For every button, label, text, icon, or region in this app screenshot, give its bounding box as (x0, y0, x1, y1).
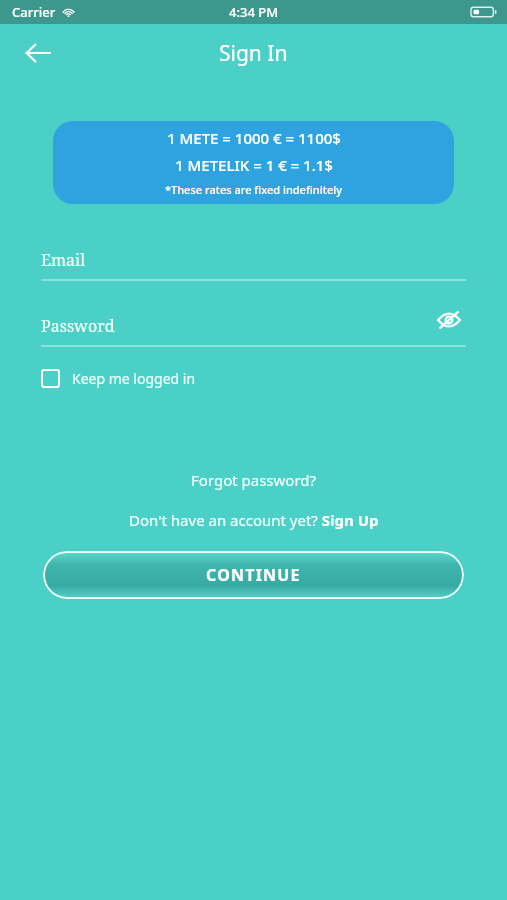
button[interactable]: Forgot password? (183, 466, 325, 494)
staticText: Carrier (12, 3, 56, 21)
button[interactable]: Toggle password visibility (432, 303, 466, 337)
staticText: Sign In (219, 39, 288, 68)
staticText: Forgot password? (191, 470, 317, 490)
staticText: 1 METELIK = 1 € = 1.1$ (175, 155, 333, 175)
button[interactable]: 1 METE = 1000 € = 1100$ (53, 121, 454, 204)
staticText: Email (41, 249, 86, 271)
staticText: *These rates are fixed indefinitely (165, 182, 342, 197)
button[interactable]: Email (41, 243, 466, 281)
staticText: Keep me logged in (72, 369, 196, 388)
button[interactable]: Back (14, 29, 62, 77)
staticText: CONTINUE (206, 564, 301, 586)
staticText: Password (41, 315, 115, 337)
staticText: Don't have an account yet? Sign Up (129, 510, 379, 530)
staticText: 4:34 PM (229, 3, 279, 21)
button[interactable]: Don't have an account yet? Sign Up (121, 508, 387, 532)
button[interactable]: Keep me logged in (41, 369, 196, 388)
button[interactable]: CONTINUE (43, 551, 464, 599)
staticText: 1 METE = 1000 € = 1100$ (167, 128, 341, 148)
button[interactable]: Password (41, 309, 466, 347)
